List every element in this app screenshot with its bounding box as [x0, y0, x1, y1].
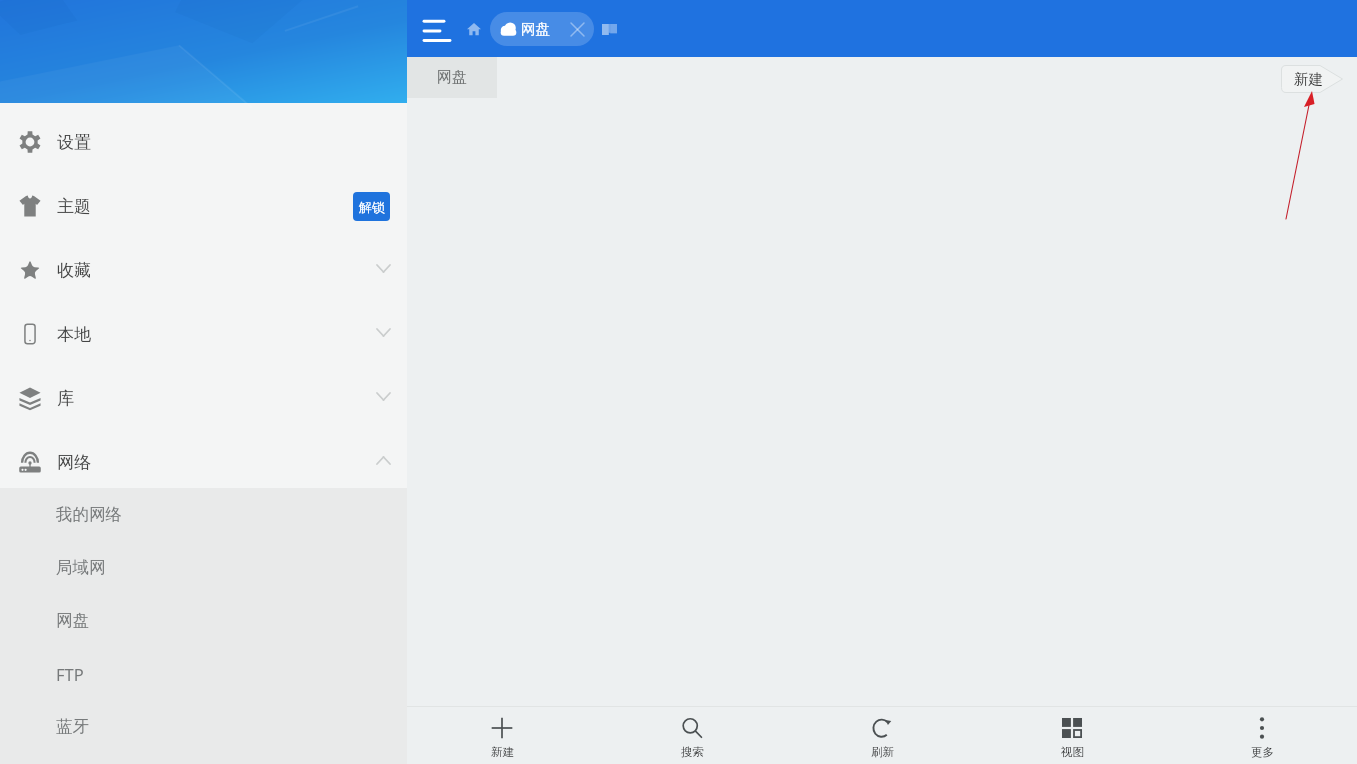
button[interactable]: 网盘	[0, 594, 407, 647]
button[interactable]: 网盘	[407, 57, 497, 98]
staticText: 我的网络	[56, 504, 122, 525]
staticText: FTP	[56, 663, 84, 685]
button[interactable]: Menu	[413, 5, 455, 53]
staticText: 本地	[57, 324, 91, 345]
staticText: 网络	[57, 452, 91, 473]
staticText: 收藏	[57, 260, 91, 281]
staticText: 更多	[1251, 745, 1274, 759]
button[interactable]: 蓝牙	[0, 700, 407, 753]
staticText: 网盘	[437, 68, 467, 87]
button[interactable]: Tabs	[594, 14, 624, 44]
button[interactable]: 刷新	[787, 707, 977, 764]
staticText: 视图	[1061, 745, 1084, 759]
staticText: 主题	[57, 196, 91, 217]
button[interactable]: FTP	[0, 647, 407, 700]
button[interactable]: 网络	[0, 430, 407, 488]
button[interactable]: 解锁	[353, 192, 390, 221]
button[interactable]: 新建	[407, 707, 597, 764]
button[interactable]: 网盘	[490, 12, 594, 46]
button[interactable]: 收藏	[0, 238, 407, 302]
button[interactable]: 局域网	[0, 541, 407, 594]
button[interactable]: Close tab	[565, 17, 589, 41]
button[interactable]: 搜索	[597, 707, 787, 764]
staticText: 蓝牙	[56, 716, 89, 737]
staticText: 解锁	[359, 199, 385, 215]
staticText: 刷新	[871, 745, 894, 759]
staticText: 局域网	[56, 557, 106, 578]
button[interactable]: 设置	[0, 110, 407, 174]
button[interactable]: 库	[0, 366, 407, 430]
button[interactable]: 我的网络	[0, 488, 407, 541]
button[interactable]: 主题	[0, 174, 407, 238]
staticText: 搜索	[681, 745, 704, 759]
staticText: 新建	[491, 745, 514, 759]
staticText: 库	[57, 388, 74, 409]
staticText: 网盘	[521, 20, 550, 38]
staticText: 设置	[57, 132, 91, 153]
button[interactable]: 本地	[0, 302, 407, 366]
staticText: 新建	[1294, 70, 1323, 88]
button[interactable]: Home	[458, 13, 490, 45]
button[interactable]: 视图	[977, 707, 1167, 764]
staticText: 网盘	[56, 610, 89, 631]
button[interactable]: 新建	[1281, 65, 1343, 93]
button[interactable]: 更多	[1167, 707, 1357, 764]
